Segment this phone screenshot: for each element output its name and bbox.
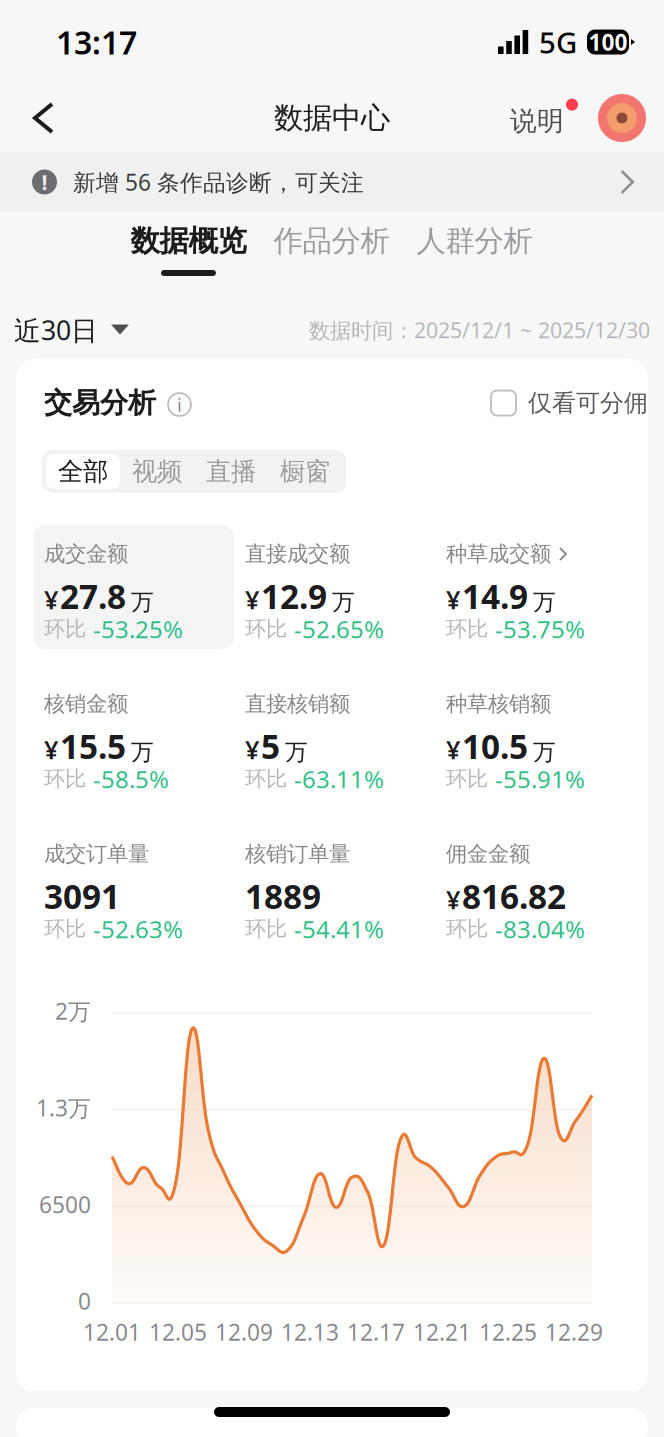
staticText: 2万 — [55, 996, 91, 1026]
staticText: 3091 — [44, 874, 120, 918]
staticText: -52.65% — [294, 613, 384, 645]
staticText: i — [177, 392, 182, 417]
staticText: 近30日 — [14, 312, 98, 348]
staticText: 种草成交额 — [446, 541, 551, 567]
button[interactable]: 人群分析 — [403, 219, 546, 279]
staticText: 万 — [131, 588, 154, 616]
staticText: ! — [41, 168, 47, 196]
staticText: 人群分析 — [416, 223, 532, 259]
staticText: 万 — [533, 738, 556, 766]
staticText: -53.75% — [495, 613, 585, 645]
staticText: 橱窗 — [280, 456, 330, 487]
staticText: 14.9 — [462, 574, 528, 618]
staticText: -53.25% — [93, 613, 183, 645]
button[interactable]: 数据概览 — [117, 219, 260, 279]
staticText: 12.05 — [149, 1317, 207, 1347]
staticText: ¥ — [245, 732, 259, 766]
staticText: 新增 56 条作品诊断，可关注 — [73, 167, 364, 197]
staticText: 直接成交额 — [245, 541, 350, 567]
staticText: 6500 — [39, 1189, 91, 1219]
staticText: 100 — [588, 27, 627, 57]
staticText: 12.01 — [83, 1317, 141, 1347]
staticText: 816.82 — [462, 874, 566, 918]
staticText: 直播 — [206, 456, 256, 487]
button[interactable]: 直接核销额 — [234, 675, 435, 799]
staticText: 全部 — [58, 456, 108, 487]
staticText: ¥ — [446, 882, 460, 916]
staticText: 成交订单量 — [44, 841, 149, 867]
staticText: 数据时间：2025/12/1 ~ 2025/12/30 — [309, 316, 650, 344]
button[interactable]: 核销订单量 — [234, 825, 435, 949]
staticText: 环比 — [245, 916, 287, 942]
staticText: 环比 — [245, 616, 287, 642]
staticText: ¥ — [446, 582, 460, 616]
staticText: 1889 — [245, 874, 321, 918]
button[interactable]: 直播 — [194, 454, 268, 489]
staticText: -52.63% — [93, 913, 183, 945]
staticText: 环比 — [245, 766, 287, 792]
button[interactable]: Profile — [578, 94, 664, 142]
button[interactable]: 说明 — [510, 85, 578, 151]
button[interactable]: 全部 — [46, 454, 120, 489]
staticText: 种草核销额 — [446, 691, 551, 717]
staticText: 说明 — [510, 105, 564, 137]
staticText: 27.8 — [60, 574, 126, 618]
staticText: 10.5 — [462, 724, 528, 768]
staticText: 万 — [332, 588, 355, 616]
button[interactable]: 仅看可分佣 — [491, 388, 648, 418]
staticText: 5G — [539, 22, 577, 61]
staticText: 核销订单量 — [245, 841, 350, 867]
staticText: ¥ — [44, 732, 58, 766]
staticText: 成交金额 — [44, 541, 128, 567]
button[interactable]: 成交订单量 — [33, 825, 234, 949]
staticText: 数据中心 — [274, 100, 390, 136]
staticText: 环比 — [446, 616, 488, 642]
staticText: 作品分析 — [273, 223, 389, 259]
button[interactable]: Back — [0, 84, 82, 152]
staticText: 佣金金额 — [446, 841, 530, 867]
staticText: -63.11% — [294, 763, 384, 795]
staticText: -54.41% — [294, 913, 384, 945]
staticText: 5 — [261, 724, 280, 768]
staticText: 12.29 — [545, 1317, 603, 1347]
button[interactable]: ! — [0, 152, 664, 212]
staticText: -58.5% — [93, 763, 169, 795]
staticText: 直接核销额 — [245, 691, 350, 717]
staticText: 核销金额 — [44, 691, 128, 717]
button[interactable]: 种草成交额 — [435, 525, 636, 649]
staticText: 数据概览 — [130, 223, 246, 259]
button[interactable]: 直接成交额 — [234, 525, 435, 649]
staticText: 环比 — [44, 916, 86, 942]
staticText: 12.9 — [261, 574, 327, 618]
staticText: 12.09 — [215, 1317, 273, 1347]
staticText: 仅看可分佣 — [528, 388, 648, 418]
button[interactable]: 成交金额 — [33, 525, 234, 649]
staticText: 交易分析 — [44, 386, 156, 420]
button[interactable]: 橱窗 — [268, 454, 342, 489]
button[interactable]: 近30日 — [0, 300, 129, 360]
button[interactable]: 佣金金额 — [435, 825, 636, 949]
staticText: 环比 — [44, 616, 86, 642]
button[interactable]: 作品分析 — [260, 219, 403, 279]
staticText: 万 — [131, 738, 154, 766]
staticText: 视频 — [132, 456, 182, 487]
staticText: -83.04% — [495, 913, 585, 945]
staticText: 环比 — [446, 766, 488, 792]
staticText: ¥ — [446, 732, 460, 766]
staticText: 12.17 — [347, 1317, 405, 1347]
button[interactable]: 种草核销额 — [435, 675, 636, 799]
button[interactable]: 核销金额 — [33, 675, 234, 799]
staticText: 1.3万 — [36, 1093, 91, 1123]
staticText: 12.21 — [413, 1317, 471, 1347]
staticText: 环比 — [446, 916, 488, 942]
staticText: 环比 — [44, 766, 86, 792]
staticText: 12.25 — [479, 1317, 537, 1347]
staticText: ¥ — [44, 582, 58, 616]
staticText: 15.5 — [60, 724, 126, 768]
staticText: 万 — [285, 738, 308, 766]
staticText: 12.13 — [281, 1317, 339, 1347]
staticText: 0 — [78, 1286, 91, 1316]
staticText: -55.91% — [495, 763, 585, 795]
staticText: 万 — [533, 588, 556, 616]
button[interactable]: 视频 — [120, 454, 194, 489]
